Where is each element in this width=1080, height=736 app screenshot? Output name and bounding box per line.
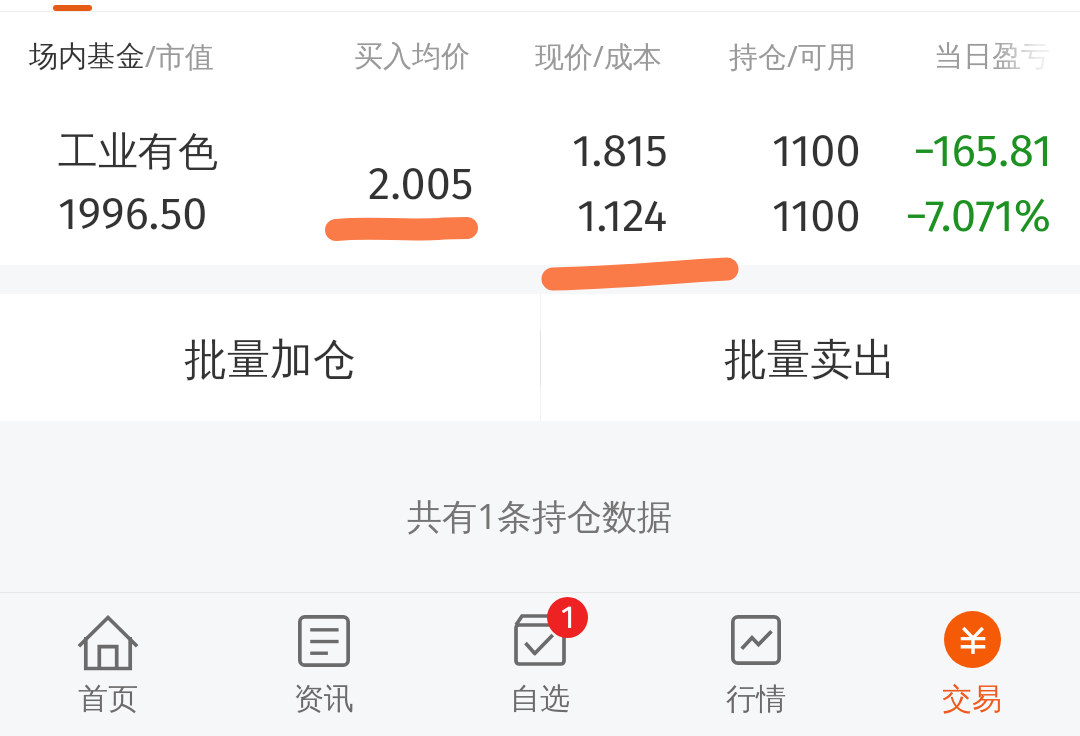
staticText: 当日盈亏 xyxy=(934,38,1050,75)
staticText: 首页 xyxy=(78,680,138,718)
staticText: 资讯 xyxy=(294,680,354,718)
button[interactable]: 交易 xyxy=(864,592,1080,736)
staticText: 2.005 xyxy=(368,157,474,211)
button[interactable]: 首页 xyxy=(0,592,216,736)
staticText: 1 xyxy=(561,599,575,636)
staticText: −7.071% xyxy=(905,189,1052,243)
staticText: 交易 xyxy=(942,680,1002,718)
staticText: /市值 xyxy=(145,36,214,76)
button[interactable]: 自选 xyxy=(432,592,648,736)
button[interactable]: 批量卖出 xyxy=(540,294,1080,421)
staticText: 1100 xyxy=(772,189,861,243)
staticText: 行情 xyxy=(726,680,786,718)
staticText: 工业有色 xyxy=(58,126,218,176)
staticText: 场内基金 xyxy=(29,38,145,75)
button[interactable]: 资讯 xyxy=(216,592,432,736)
staticText: 买入均价 xyxy=(354,38,470,75)
staticText: 1.124 xyxy=(577,189,668,243)
staticText: 1100 xyxy=(772,124,861,178)
staticText: 持仓/可用 xyxy=(729,36,856,76)
staticText: 现价/成本 xyxy=(535,36,662,76)
staticText: 批量加仓 xyxy=(184,333,356,387)
staticText: 1.815 xyxy=(572,124,668,178)
button[interactable]: 行情 xyxy=(648,592,864,736)
staticText: 自选 xyxy=(510,680,570,718)
staticText: 1996.50 xyxy=(58,187,208,241)
staticText: 共有1条持仓数据 xyxy=(407,492,673,540)
staticText: −165.81 xyxy=(913,124,1052,178)
staticText: 批量卖出 xyxy=(724,333,896,387)
button[interactable]: 批量加仓 xyxy=(0,294,540,421)
